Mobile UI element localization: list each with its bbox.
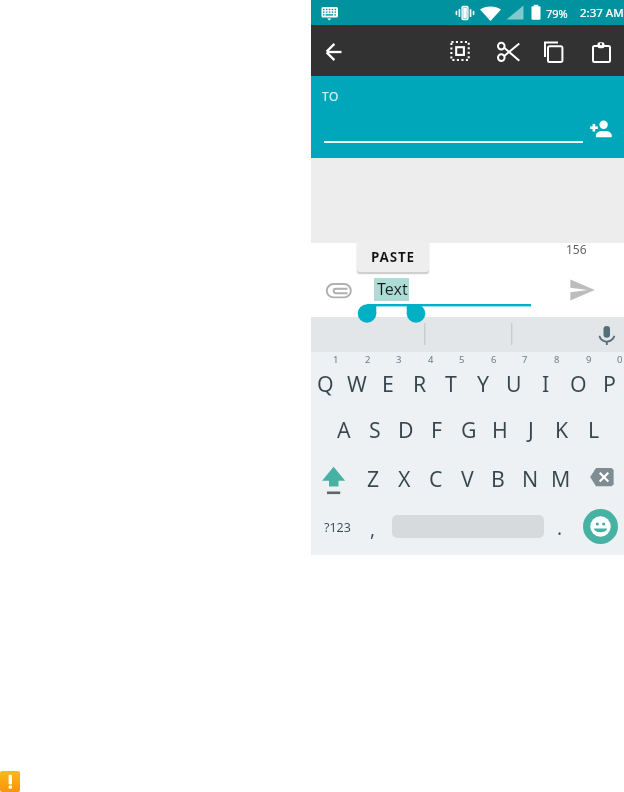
button[interactable]: T <box>391 359 511 407</box>
staticText: C <box>429 464 443 493</box>
staticText: H <box>492 415 508 444</box>
button[interactable]: A <box>284 405 404 453</box>
staticText: L <box>588 415 600 444</box>
button[interactable] <box>590 38 616 66</box>
button[interactable]: D <box>346 405 466 453</box>
staticText: 79% <box>546 6 568 21</box>
button[interactable]: Z <box>313 454 433 502</box>
staticText: 4 <box>428 353 434 366</box>
staticText: G <box>461 415 477 444</box>
button[interactable]: U <box>454 359 574 407</box>
staticText: ?123 <box>324 519 351 536</box>
staticText: 2:37 AM <box>580 5 624 21</box>
button[interactable]: H <box>440 405 560 453</box>
staticText: E <box>382 369 394 398</box>
button[interactable]: B <box>438 454 558 502</box>
staticText: P <box>603 369 616 398</box>
button[interactable]: O <box>518 359 624 407</box>
button[interactable]: J <box>471 405 591 453</box>
staticText: F <box>431 415 443 444</box>
button[interactable]: R <box>360 359 480 407</box>
staticText: I <box>542 369 550 398</box>
button[interactable] <box>318 461 350 497</box>
button[interactable]: V <box>407 454 527 502</box>
staticText: 9 <box>586 353 592 366</box>
button[interactable]: I <box>486 359 606 407</box>
staticText: Q <box>317 369 334 398</box>
button[interactable] <box>583 108 621 144</box>
button[interactable]: S <box>315 405 435 453</box>
staticText: TO <box>322 88 339 104</box>
staticText: 7 <box>522 353 528 366</box>
staticText: 8 <box>554 353 560 366</box>
staticText: R <box>413 369 427 398</box>
button[interactable]: L <box>534 405 624 453</box>
staticText: 2 <box>365 353 371 366</box>
button[interactable] <box>449 40 473 64</box>
button[interactable] <box>595 320 621 348</box>
button[interactable]: G <box>409 405 529 453</box>
staticText: B <box>491 464 505 493</box>
staticText: N <box>522 464 539 493</box>
staticText: A <box>337 415 351 444</box>
button[interactable]: P <box>549 359 624 407</box>
button[interactable] <box>542 38 568 66</box>
staticText: X <box>398 464 411 493</box>
button[interactable] <box>583 509 618 544</box>
staticText: O <box>570 369 587 398</box>
button[interactable]: . <box>500 504 620 552</box>
staticText: M <box>551 464 571 493</box>
button[interactable] <box>321 277 355 304</box>
staticText: V <box>461 464 474 493</box>
button[interactable]: X <box>344 454 464 502</box>
staticText: J <box>528 415 534 444</box>
button[interactable]: , <box>313 505 433 553</box>
staticText: K <box>555 415 569 444</box>
button[interactable]: Q <box>265 359 385 407</box>
button[interactable]: ?123 <box>277 503 397 551</box>
button[interactable] <box>317 34 353 70</box>
staticText: 5 <box>459 353 465 366</box>
staticText: W <box>347 369 367 398</box>
staticText: U <box>506 369 522 398</box>
staticText: 0 <box>617 353 623 366</box>
button[interactable]: W <box>297 359 417 407</box>
staticText: 156 <box>566 241 587 257</box>
button[interactable]: E <box>328 359 448 407</box>
staticText: 6 <box>491 353 497 366</box>
button[interactable] <box>561 270 603 310</box>
button[interactable]: K <box>502 405 622 453</box>
staticText: Y <box>477 369 490 398</box>
button[interactable]: F <box>377 405 497 453</box>
button[interactable]: PASTE <box>357 241 429 272</box>
staticText: PASTE <box>371 248 415 266</box>
staticText: , <box>370 516 376 542</box>
staticText: Text <box>377 278 408 300</box>
staticText: 3 <box>396 353 402 366</box>
button[interactable]: M <box>501 454 621 502</box>
staticText: 1 <box>333 353 339 366</box>
staticText: T <box>445 369 457 398</box>
button[interactable]: N <box>470 454 590 502</box>
staticText: S <box>369 415 381 444</box>
staticText: D <box>398 415 414 444</box>
staticText: . <box>557 515 563 541</box>
button[interactable] <box>496 38 522 66</box>
button[interactable]: Y <box>423 359 543 407</box>
staticText: Z <box>367 464 380 493</box>
button[interactable]: C <box>376 454 496 502</box>
button[interactable] <box>589 466 616 488</box>
